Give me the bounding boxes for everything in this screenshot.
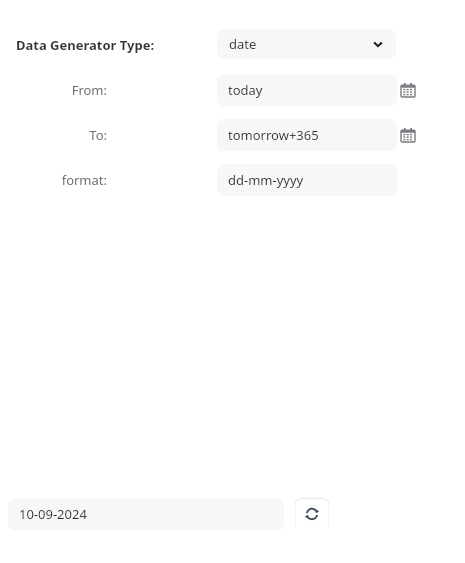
button[interactable]: dd-mm-yyyy [217,164,397,196]
staticText: From: [71,81,107,99]
button[interactable]: 10-09-2024 [8,498,284,530]
staticText: today [228,81,263,99]
staticText: Data Generator Type: [16,36,155,54]
button[interactable]: date [217,29,396,59]
staticText: date [229,35,372,53]
staticText: tomorrow+365 [228,126,319,144]
staticText: format: [61,171,107,189]
staticText: 10-09-2024 [19,505,87,523]
button[interactable]: Pick date [398,80,418,100]
button[interactable]: tomorrow+365 [217,119,397,151]
staticText: dd-mm-yyyy [228,171,304,189]
staticText: To: [89,126,107,144]
button[interactable]: Refresh [295,497,329,531]
button[interactable]: Pick date [398,125,418,145]
button[interactable]: today [217,74,397,106]
